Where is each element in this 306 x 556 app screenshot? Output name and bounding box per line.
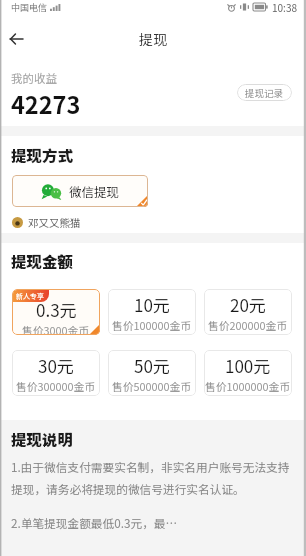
button[interactable]: 30元 — [12, 350, 100, 396]
staticText: 售价200000金币 — [208, 317, 288, 333]
button[interactable]: 100元 — [204, 350, 292, 396]
staticText: 30元 — [38, 353, 74, 378]
staticText: 10:38 — [272, 0, 297, 14]
button[interactable]: 50元 — [108, 350, 196, 396]
staticText: 售价1000000金币 — [205, 378, 291, 394]
staticText: 售价300000金币 — [16, 378, 96, 394]
staticText: 提现 — [139, 29, 167, 49]
staticText: 新人专享 — [16, 291, 44, 301]
staticText: 100元 — [225, 353, 271, 378]
button[interactable]: 提现记录 — [237, 84, 292, 101]
staticText: 1.由于微信支付需要实名制，非实名用户账号无法支持提现，请务必将提现的微信号进行… — [11, 458, 293, 498]
button[interactable]: 0.3元 — [12, 289, 100, 335]
staticText: 中国电信 — [11, 1, 48, 14]
staticText: 售价3000金币 — [22, 322, 90, 335]
staticText: 提现金额 — [11, 250, 74, 272]
button[interactable]: Back — [3, 26, 29, 52]
staticText: 0.3元 — [36, 297, 77, 322]
staticText: 2.单笔提现金额最低0.3元，最… — [11, 514, 178, 531]
staticText: 微信提现 — [69, 182, 120, 200]
staticText: 邓又又熊猫 — [28, 215, 81, 230]
button[interactable]: 10元 — [108, 289, 196, 335]
staticText: 42273 — [11, 87, 81, 121]
staticText: 50元 — [134, 353, 170, 378]
staticText: 售价500000金币 — [112, 378, 192, 394]
staticText: 提现说明 — [11, 428, 74, 450]
staticText: 提现记录 — [245, 86, 284, 100]
staticText: 提现方式 — [11, 144, 74, 166]
staticText: 20元 — [230, 292, 266, 317]
button[interactable]: 20元 — [204, 289, 292, 335]
staticText: 我的收益 — [11, 70, 57, 87]
staticText: 售价100000金币 — [112, 317, 192, 333]
staticText: 10元 — [134, 292, 170, 317]
button[interactable]: 微信提现 — [12, 175, 148, 207]
